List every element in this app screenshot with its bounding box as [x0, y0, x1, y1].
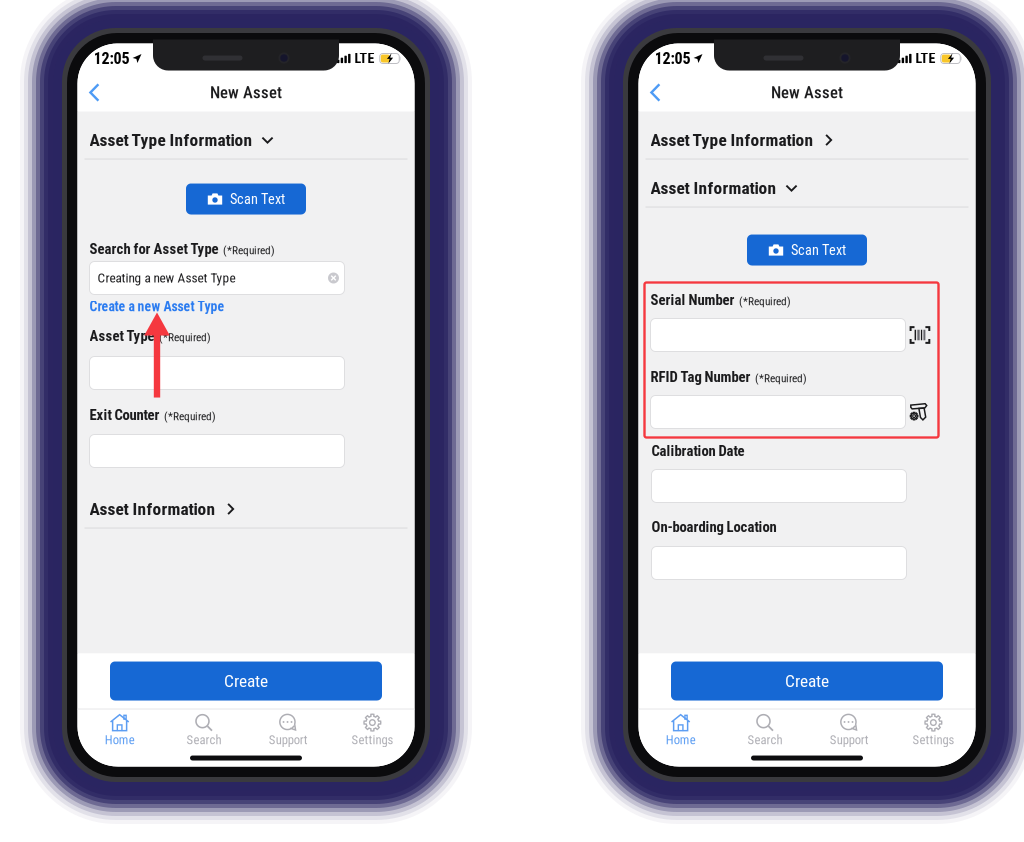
- staticText: LTE: [354, 50, 374, 67]
- staticText: RFID Tag Number: [650, 368, 750, 386]
- button[interactable]: Scan Text: [186, 183, 306, 214]
- button[interactable]: Search: [723, 709, 807, 751]
- staticText: Create: [224, 671, 268, 691]
- staticText: Asset Type Information: [650, 130, 813, 150]
- staticText: Support: [830, 733, 869, 747]
- staticText: Asset Type: [89, 327, 154, 345]
- button[interactable]: Asset Type Information: [638, 111, 975, 159]
- staticText: Search: [186, 733, 221, 747]
- staticText: Settings: [351, 733, 393, 747]
- button[interactable]: Asset Information: [638, 159, 975, 207]
- staticText: (*Required): [223, 244, 275, 257]
- staticText: New Asset: [210, 83, 282, 102]
- staticText: Creating a new Asset Type: [97, 270, 235, 286]
- button[interactable]: Create: [671, 661, 943, 700]
- staticText: Asset Information: [89, 499, 215, 519]
- button[interactable]: Home: [77, 709, 162, 751]
- staticText: Support: [269, 733, 308, 747]
- staticText: New Asset: [771, 83, 843, 102]
- button[interactable]: Asset Type Information: [77, 111, 414, 159]
- button[interactable]: Back: [638, 76, 672, 108]
- staticText: Settings: [912, 733, 954, 747]
- button[interactable]: Back: [77, 76, 111, 108]
- staticText: Search for Asset Type: [89, 240, 218, 258]
- staticText: Search: [747, 733, 782, 747]
- button[interactable]: Scan Text: [747, 234, 867, 265]
- button[interactable]: Asset Information: [77, 480, 414, 528]
- staticText: Home: [666, 733, 696, 747]
- staticText: Scan Text: [791, 242, 846, 258]
- button[interactable]: Create: [110, 661, 382, 700]
- button[interactable]: Support: [246, 709, 330, 751]
- button[interactable]: Support: [807, 709, 891, 751]
- staticText: (*Required): [739, 295, 791, 308]
- staticText: Asset Type Information: [89, 130, 252, 150]
- staticText: Calibration Date: [651, 442, 744, 460]
- button[interactable]: Create a new Asset Type: [89, 298, 344, 314]
- staticText: Home: [105, 733, 135, 747]
- staticText: Asset Information: [650, 178, 776, 198]
- staticText: Exit Counter: [89, 406, 159, 424]
- staticText: 12:05: [93, 49, 129, 68]
- staticText: LTE: [915, 50, 935, 67]
- staticText: (*Required): [164, 410, 216, 423]
- staticText: Create: [785, 671, 829, 691]
- staticText: (*Required): [755, 372, 807, 385]
- staticText: (*Required): [159, 331, 211, 344]
- staticText: Create a new Asset Type: [89, 298, 224, 315]
- staticText: On-boarding Location: [651, 518, 776, 536]
- staticText: Scan Text: [230, 191, 285, 207]
- button[interactable]: Settings: [330, 709, 414, 751]
- button[interactable]: Home: [638, 709, 723, 751]
- staticText: Serial Number: [650, 291, 734, 309]
- staticText: 12:05: [654, 49, 690, 68]
- button[interactable]: Settings: [891, 709, 975, 751]
- button[interactable]: Search: [162, 709, 246, 751]
